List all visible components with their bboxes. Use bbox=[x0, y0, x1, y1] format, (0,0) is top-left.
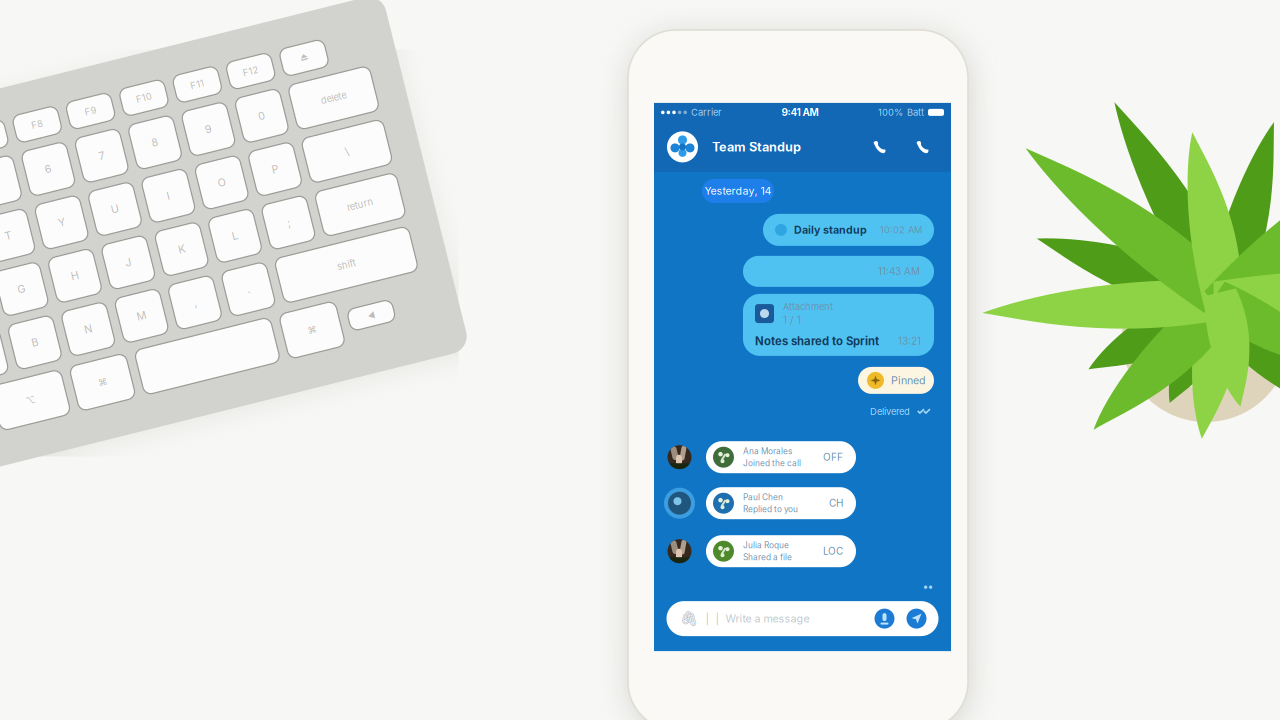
staticText: 1 / 1 bbox=[783, 314, 801, 326]
staticText: F9 bbox=[118, 103, 130, 114]
staticText: •• bbox=[923, 580, 933, 593]
staticText: Attachment bbox=[783, 301, 833, 312]
staticText: 10:02 AM bbox=[880, 224, 922, 236]
staticText: 9:41 AM bbox=[781, 106, 818, 118]
staticText: 8 bbox=[176, 148, 183, 161]
staticText: 🖇 bbox=[679, 610, 698, 627]
staticText: Team Standup bbox=[712, 139, 801, 154]
staticText: F12 bbox=[281, 103, 297, 114]
button[interactable]: Video call bbox=[900, 140, 929, 153]
staticText: | | Write a message bbox=[705, 612, 809, 625]
staticText: J bbox=[121, 258, 127, 271]
staticText: ⌘ bbox=[66, 369, 75, 380]
button[interactable]: Ana Morales bbox=[654, 441, 951, 473]
staticText: Replied to you bbox=[743, 504, 798, 514]
button[interactable]: Group profile bbox=[667, 131, 698, 162]
staticText: LOC bbox=[823, 545, 843, 557]
staticText: Pinned bbox=[891, 374, 926, 387]
staticText: Julia Roque bbox=[743, 540, 789, 550]
staticText: B bbox=[11, 313, 18, 326]
staticText: Carrier bbox=[691, 107, 722, 118]
staticText: M bbox=[119, 313, 129, 326]
staticText: , bbox=[178, 313, 181, 326]
staticText: L bbox=[231, 258, 237, 271]
button[interactable]: Julia Roque bbox=[654, 535, 951, 567]
staticText: 5 bbox=[11, 148, 17, 161]
staticText: 13:21 bbox=[898, 335, 921, 347]
staticText: ⌥ bbox=[0, 369, 1, 380]
staticText: shift bbox=[326, 314, 345, 325]
button[interactable]: Daily standup bbox=[763, 214, 934, 246]
button[interactable]: 11:43 AM bbox=[743, 256, 934, 287]
staticText: F8 bbox=[63, 103, 75, 114]
staticText: . bbox=[233, 313, 236, 326]
staticText: F10 bbox=[171, 103, 187, 114]
staticText: F11 bbox=[227, 103, 241, 114]
staticText: G bbox=[10, 258, 18, 271]
button[interactable]: Send bbox=[894, 609, 926, 629]
staticText: 6 bbox=[66, 148, 73, 161]
staticText: 9 bbox=[231, 148, 238, 161]
staticText: Shared a file bbox=[743, 552, 792, 562]
staticText: Yesterday, 14 bbox=[704, 184, 771, 197]
staticText: Batt bbox=[907, 107, 924, 118]
staticText: T bbox=[11, 203, 18, 216]
button[interactable]: Paul Chen bbox=[654, 487, 951, 519]
staticText: Paul Chen bbox=[743, 492, 783, 502]
staticText: Joined the call bbox=[743, 458, 801, 468]
staticText: return bbox=[350, 259, 377, 270]
staticText: 7 bbox=[121, 148, 127, 161]
staticText: OFF bbox=[823, 451, 843, 463]
staticText: O bbox=[230, 203, 238, 216]
staticText: 100% bbox=[878, 107, 903, 118]
button[interactable]: Voice call bbox=[873, 140, 886, 153]
button[interactable]: Attachment bbox=[743, 294, 934, 356]
staticText: \ bbox=[361, 203, 365, 216]
staticText: Delivered bbox=[870, 406, 910, 417]
button[interactable]: Pinned bbox=[858, 367, 934, 394]
staticText: Notes shared to Sprint bbox=[755, 334, 879, 348]
staticText: CH bbox=[829, 497, 843, 509]
staticText: 11:43 AM bbox=[878, 265, 920, 277]
button[interactable]: Voice message bbox=[874, 609, 894, 629]
staticText: Ana Morales bbox=[743, 446, 792, 456]
staticText: Daily standup bbox=[794, 223, 867, 236]
